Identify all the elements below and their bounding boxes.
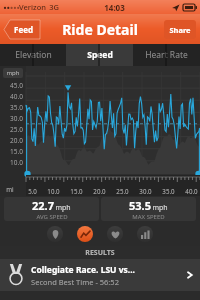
staticText: 10.0 — [47, 187, 60, 195]
button[interactable]: Speed — [66, 44, 133, 66]
staticText: 20.0 — [10, 136, 23, 145]
staticText: 35.0 — [10, 103, 23, 112]
staticText: Ride Detail — [62, 20, 138, 39]
staticText: 22.7 — [32, 198, 54, 213]
staticText: Second Best Time - 56:52 — [31, 277, 119, 287]
button[interactable]: Elevation — [0, 44, 66, 66]
button[interactable]: Heart rate — [107, 226, 123, 242]
staticText: 40.0 — [185, 187, 198, 195]
staticText: 20.0 — [93, 187, 106, 195]
staticText: 30.0 — [10, 114, 23, 123]
button[interactable]: Heart Rate — [133, 44, 200, 66]
staticText: Elevation — [15, 49, 52, 61]
staticText: 14:03 — [104, 2, 125, 13]
staticText: 5.0 — [28, 187, 37, 195]
staticText: 35.0 — [162, 187, 175, 195]
staticText: MAX SPEED — [132, 213, 165, 221]
staticText: Feed — [14, 24, 33, 35]
button[interactable]: 22.7 — [4, 197, 99, 221]
button[interactable]: Share — [164, 20, 196, 39]
staticText: mi — [6, 185, 14, 193]
staticText: Verizon — [19, 2, 46, 12]
staticText: Collegiate Race. LSU vs... — [31, 264, 135, 276]
staticText: 3G — [49, 2, 59, 12]
staticText: 25.0 — [10, 125, 23, 134]
button[interactable]: 53.5 — [101, 197, 196, 221]
staticText: Share — [169, 25, 191, 35]
button[interactable]: Collegiate Race. LSU vs... — [0, 259, 200, 291]
button[interactable]: Stats — [137, 226, 153, 242]
button[interactable]: Feed — [4, 20, 42, 39]
staticText: 10.0 — [10, 158, 23, 167]
staticText: mph — [6, 69, 20, 77]
staticText: 30.0 — [139, 187, 152, 195]
staticText: 25.0 — [116, 187, 129, 195]
staticText: Speed — [87, 49, 113, 61]
staticText: 15.0 — [70, 187, 83, 195]
staticText: AVG SPEED — [36, 213, 68, 221]
staticText: 45.0 — [10, 81, 23, 90]
staticText: RESULTS — [85, 248, 115, 258]
staticText: mph — [152, 203, 168, 213]
staticText: 15.0 — [10, 147, 23, 156]
staticText: 53.5 — [129, 198, 151, 213]
other: Open result — [185, 270, 195, 280]
staticText: Heart Rate — [145, 49, 188, 61]
button[interactable]: Map — [47, 226, 63, 242]
button[interactable]: Speed chart — [77, 226, 93, 242]
staticText: mph — [55, 203, 71, 213]
staticText: 40.0 — [10, 92, 23, 101]
